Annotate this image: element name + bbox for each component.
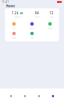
staticText: 12 <box>49 11 53 15</box>
button[interactable]: Home <box>4 89 18 100</box>
staticText: 84 <box>35 11 39 15</box>
staticText: Home <box>6 4 15 8</box>
button[interactable]: Cards <box>23 21 41 31</box>
button[interactable]: Profile <box>46 89 60 100</box>
staticText: Cards <box>29 28 34 29</box>
button[interactable]: Send <box>41 21 59 31</box>
button[interactable]: Activity <box>32 89 46 100</box>
staticText: Balance <box>14 16 20 18</box>
staticText: 9:41 <box>2 0 9 4</box>
button[interactable]: Loans <box>5 31 23 40</box>
staticText: Saved <box>34 16 39 18</box>
staticText: 4% <box>21 12 23 14</box>
button[interactable]: Cards <box>18 89 32 100</box>
button[interactable]: Pay <box>5 21 23 31</box>
button[interactable]: Plan <box>23 31 41 40</box>
staticText: Pay <box>12 28 15 29</box>
staticText: Plan <box>30 37 33 39</box>
staticText: 1.2k <box>12 11 19 15</box>
staticText: Goals <box>49 16 53 18</box>
